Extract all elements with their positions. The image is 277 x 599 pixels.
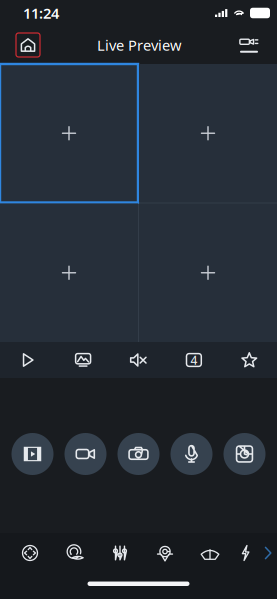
staticText: 11:24 — [23, 3, 59, 23]
staticText: Live Preview — [97, 35, 182, 55]
button[interactable]: Privacy zones — [142, 535, 187, 571]
button[interactable]: Talk — [170, 433, 212, 475]
button[interactable]: Play — [0, 342, 55, 378]
button[interactable]: Flash — [232, 535, 258, 571]
button[interactable]: Pan tilt zoom — [7, 535, 52, 571]
button[interactable]: Settings — [97, 535, 142, 571]
button[interactable]: Take photo — [117, 433, 159, 475]
button[interactable]: Mute — [111, 342, 166, 378]
button[interactable]: Add camera — [139, 203, 277, 342]
button[interactable]: Favourite — [222, 342, 277, 378]
button[interactable]: Snapshot — [223, 433, 265, 475]
button[interactable]: Add camera — [139, 64, 277, 202]
button[interactable]: Display — [55, 342, 111, 378]
button[interactable]: Add camera — [0, 203, 138, 342]
button[interactable]: Add camera — [0, 64, 138, 202]
button[interactable]: Grid layout — [166, 342, 222, 378]
button[interactable]: More controls — [258, 531, 277, 575]
button[interactable]: Wiper — [187, 535, 232, 571]
button[interactable]: Smart detections — [52, 535, 97, 571]
button[interactable]: Record video — [64, 433, 106, 475]
button[interactable]: Home — [16, 33, 40, 57]
staticText: 4 — [190, 352, 197, 368]
button[interactable]: Camera layout — [235, 33, 263, 57]
button[interactable]: Clips — [11, 433, 53, 475]
